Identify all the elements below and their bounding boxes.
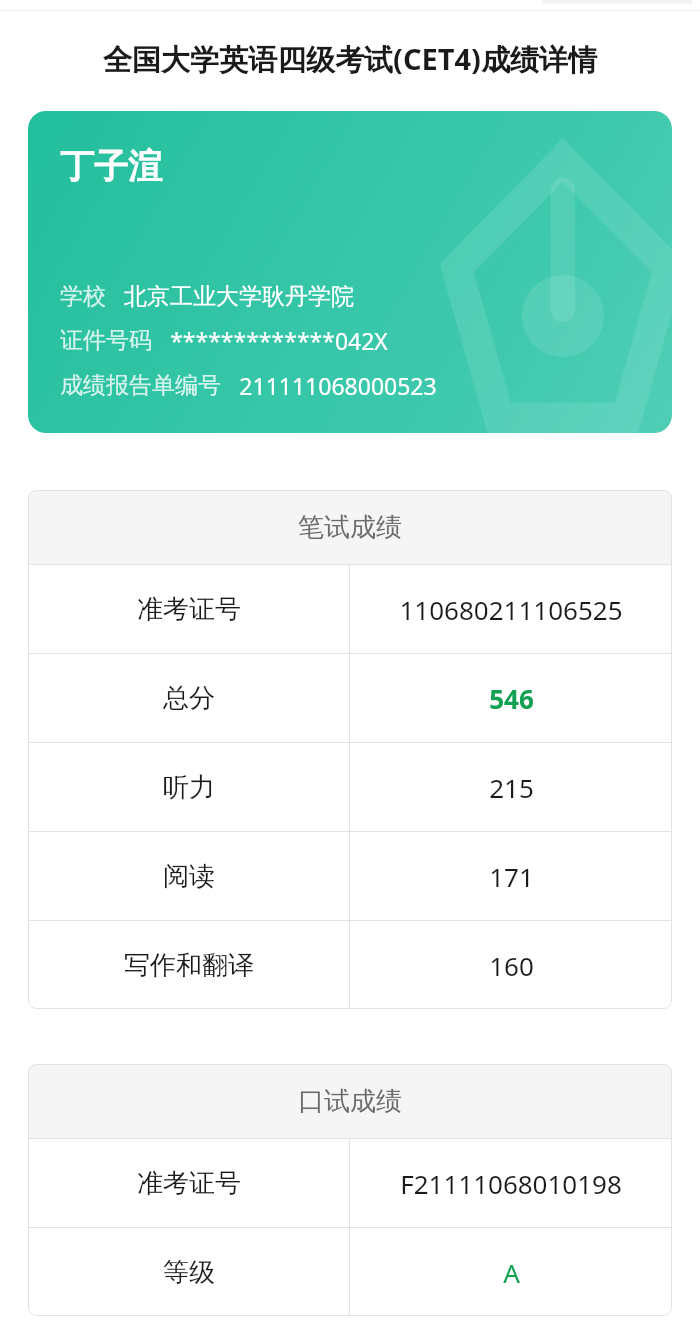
button[interactable]: 口试成绩 bbox=[28, 1064, 672, 1138]
staticText: 阅读 bbox=[163, 860, 215, 893]
button[interactable]: 准考证号 bbox=[28, 565, 672, 653]
staticText: 全国大学英语四级考试(CET4)成绩详情 bbox=[103, 39, 597, 79]
staticText: 丁子渲 bbox=[60, 145, 162, 188]
staticText: *************042X bbox=[170, 325, 388, 356]
button[interactable]: 笔试成绩 bbox=[28, 490, 672, 564]
staticText: 证件号码 bbox=[60, 326, 152, 355]
staticText: 准考证号 bbox=[137, 593, 241, 626]
button[interactable]: 写作和翻译 bbox=[28, 921, 672, 1009]
staticText: 546 bbox=[489, 681, 534, 716]
button[interactable]: 丁子渲 bbox=[28, 111, 672, 433]
button[interactable]: 听力 bbox=[28, 743, 672, 831]
button[interactable]: 准考证号 bbox=[28, 1139, 672, 1227]
staticText: 171 bbox=[489, 859, 534, 894]
staticText: 口试成绩 bbox=[298, 1085, 402, 1118]
staticText: 110680211106525 bbox=[399, 592, 623, 627]
staticText: 笔试成绩 bbox=[298, 511, 402, 544]
staticText: 写作和翻译 bbox=[124, 949, 254, 982]
staticText: 总分 bbox=[163, 682, 215, 715]
staticText: 160 bbox=[489, 948, 534, 983]
staticText: 等级 bbox=[163, 1256, 215, 1289]
staticText: 北京工业大学耿丹学院 bbox=[124, 282, 354, 311]
staticText: 215 bbox=[489, 770, 534, 805]
staticText: 准考证号 bbox=[137, 1167, 241, 1200]
button[interactable]: 阅读 bbox=[28, 832, 672, 920]
button[interactable]: 总分 bbox=[28, 654, 672, 742]
staticText: A bbox=[503, 1255, 520, 1290]
staticText: 学校 bbox=[60, 282, 106, 311]
staticText: 成绩报告单编号 bbox=[60, 371, 221, 400]
staticText: F21111068010198 bbox=[400, 1166, 622, 1201]
button[interactable]: 等级 bbox=[28, 1228, 672, 1316]
staticText: 211111068000523 bbox=[239, 370, 437, 401]
staticText: 听力 bbox=[163, 771, 215, 804]
